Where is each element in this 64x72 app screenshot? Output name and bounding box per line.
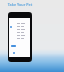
button[interactable] [17,22,29,25]
button[interactable] [11,45,16,47]
staticText: Take Your Pet Anywhere [2,2,38,6]
button[interactable] [17,25,29,28]
button[interactable] [17,37,29,40]
button[interactable] [17,31,29,34]
button[interactable] [17,28,29,31]
button[interactable] [17,34,29,37]
